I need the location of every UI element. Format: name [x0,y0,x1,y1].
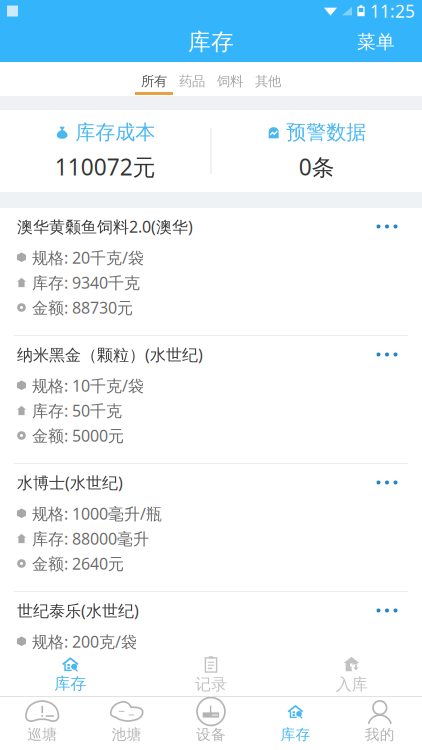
staticText: 11:25 [370,0,415,22]
staticText: 库存 [280,725,310,743]
staticText: 水博士(水世纪) [17,472,123,493]
button[interactable]: More options [363,208,411,245]
staticText: 金额: 5000元 [32,425,124,446]
staticText: 规格: 200克/袋 [32,631,137,652]
button[interactable]: 所有 [135,62,173,96]
staticText: 饲料 [217,73,243,89]
staticText: 纳米黑金（颗粒）(水世纪) [17,344,203,365]
button[interactable]: 入库 [281,653,422,696]
button[interactable]: 记录 [141,653,281,696]
staticText: 设备 [196,725,226,743]
staticText: 库存: 1000克 [32,656,124,677]
button[interactable]: 池塘 [84,696,169,750]
button[interactable]: 巡塘 [0,696,84,750]
staticText: 巡塘 [27,725,57,743]
staticText: 规格: 10千克/袋 [32,375,144,396]
staticText: 池塘 [112,725,142,743]
staticText: 预警数据 [286,120,366,145]
button[interactable]: 设备 [169,696,253,750]
staticText: 澳华黄颡鱼饲料2.0(澳华) [17,216,193,237]
staticText: 库存 [54,674,86,694]
staticText: 记录 [195,675,227,694]
staticText: 110072元 [55,152,156,182]
staticText: 库存: 50千克 [32,400,122,421]
button[interactable]: More options [363,592,411,629]
staticText: 库存: 9340千克 [32,272,140,293]
staticText: 库存: 88000毫升 [32,528,149,549]
button[interactable]: 饲料 [211,62,249,96]
staticText: 规格: 20千克/袋 [32,247,144,268]
staticText: 金额: 88730元 [32,297,133,318]
button[interactable]: 其他 [249,62,287,96]
staticText: 我的 [365,725,395,743]
staticText: 菜单 [357,30,395,53]
staticText: 0条 [299,152,335,182]
button[interactable]: 库存 [0,653,141,696]
staticText: 库存 [188,28,234,56]
button[interactable]: More options [363,464,411,501]
staticText: 世纪泰乐(水世纪) [17,600,139,621]
button[interactable]: 我的 [338,696,422,750]
button[interactable]: 药品 [173,62,211,96]
button[interactable]: More options [363,336,411,373]
staticText: 所有 [141,73,167,89]
staticText: 其他 [255,73,281,89]
staticText: 入库 [336,675,368,694]
button[interactable]: 库存 [253,696,338,750]
button[interactable]: 菜单 [337,22,422,62]
staticText: 规格: 1000毫升/瓶 [32,503,162,524]
staticText: 金额: 2640元 [32,553,124,574]
staticText: 药品 [179,73,205,89]
staticText: 库存成本 [75,120,155,145]
staticText: 金额: 400元 [32,681,115,702]
